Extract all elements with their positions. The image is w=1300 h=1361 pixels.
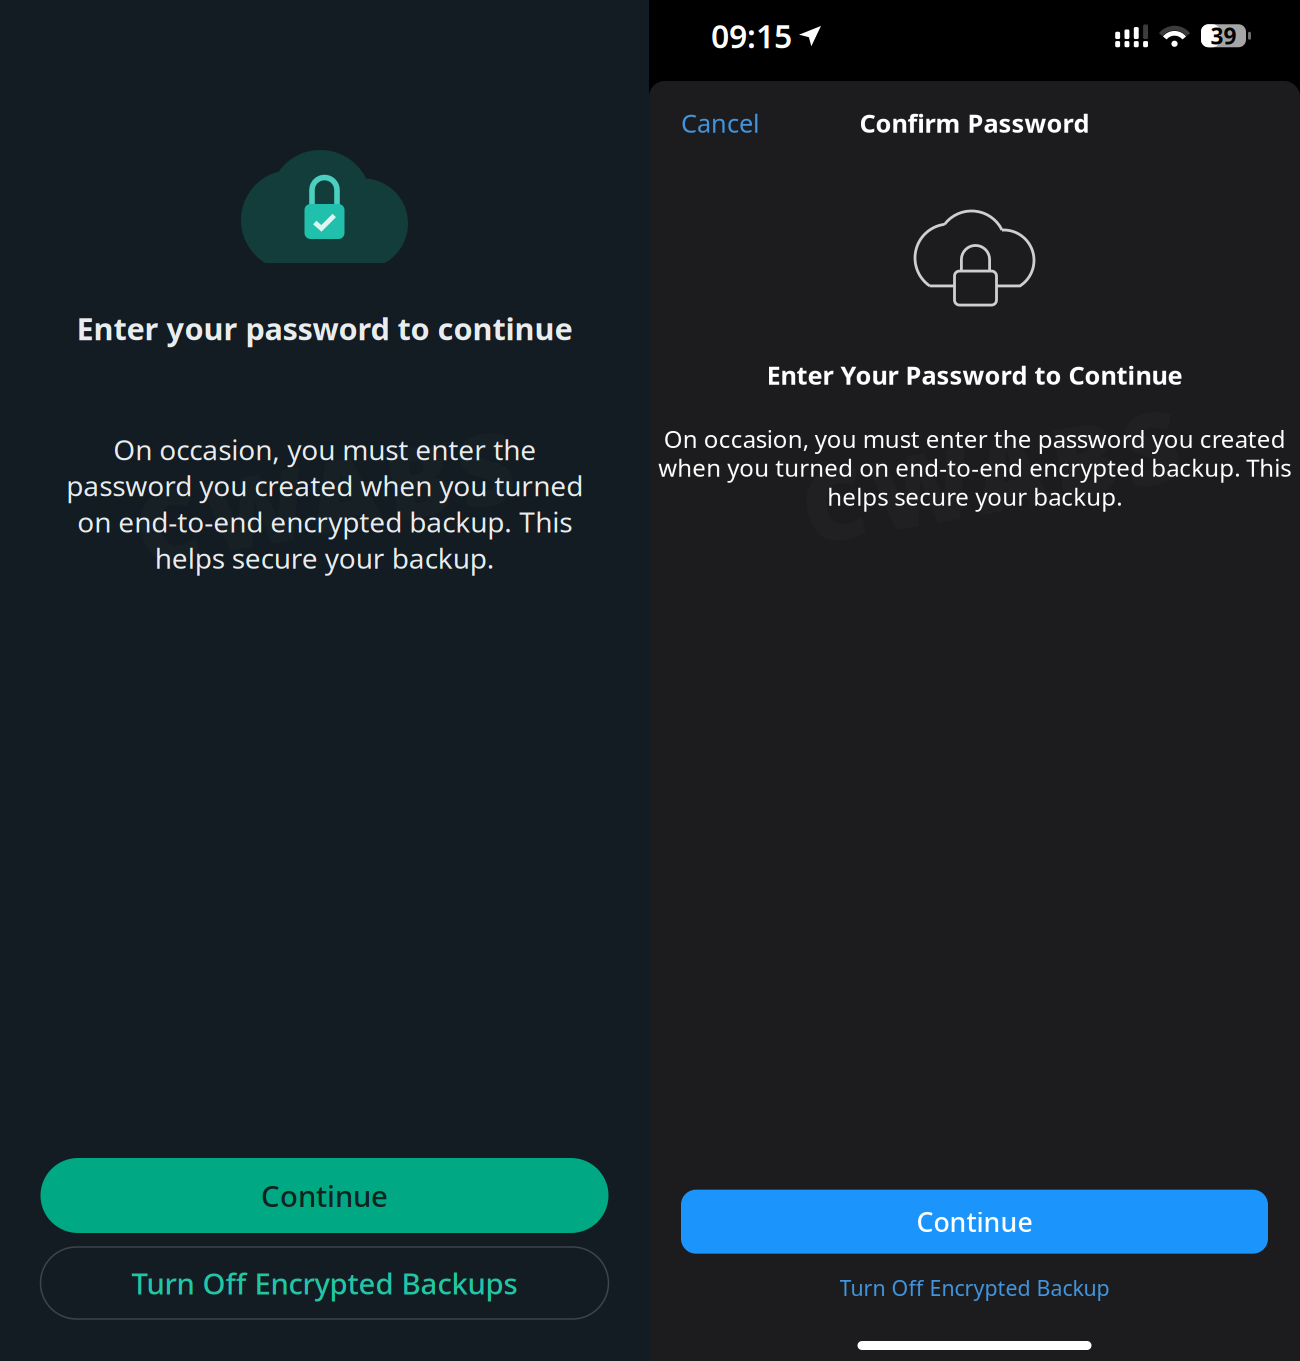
button[interactable]: Continue: [681, 1190, 1268, 1254]
staticText: CWABS: [133, 430, 516, 561]
staticText: 09:15: [711, 14, 792, 57]
staticText: CWABS: [799, 409, 1182, 540]
staticText: Continue: [261, 1176, 388, 1215]
staticText: Continue: [916, 1204, 1032, 1239]
button[interactable]: Continue: [40, 1158, 608, 1233]
button[interactable]: Turn Off Encrypted Backups: [40, 1247, 608, 1319]
button[interactable]: Cancel: [677, 98, 764, 148]
staticText: On occasion, you must enter the password…: [66, 431, 583, 576]
staticText: Enter Your Password to Continue: [766, 358, 1182, 392]
staticText: Enter your password to continue: [76, 308, 572, 349]
staticText: Turn Off Encrypted Backups: [131, 1263, 517, 1302]
staticText: Turn Off Encrypted Backup: [839, 1274, 1109, 1302]
staticText: Confirm Password: [859, 106, 1089, 140]
staticText: On occasion, you must enter the password…: [658, 423, 1291, 512]
button[interactable]: Turn Off Encrypted Backup: [829, 1266, 1119, 1310]
staticText: 39: [1210, 21, 1236, 51]
staticText: Cancel: [681, 106, 760, 140]
